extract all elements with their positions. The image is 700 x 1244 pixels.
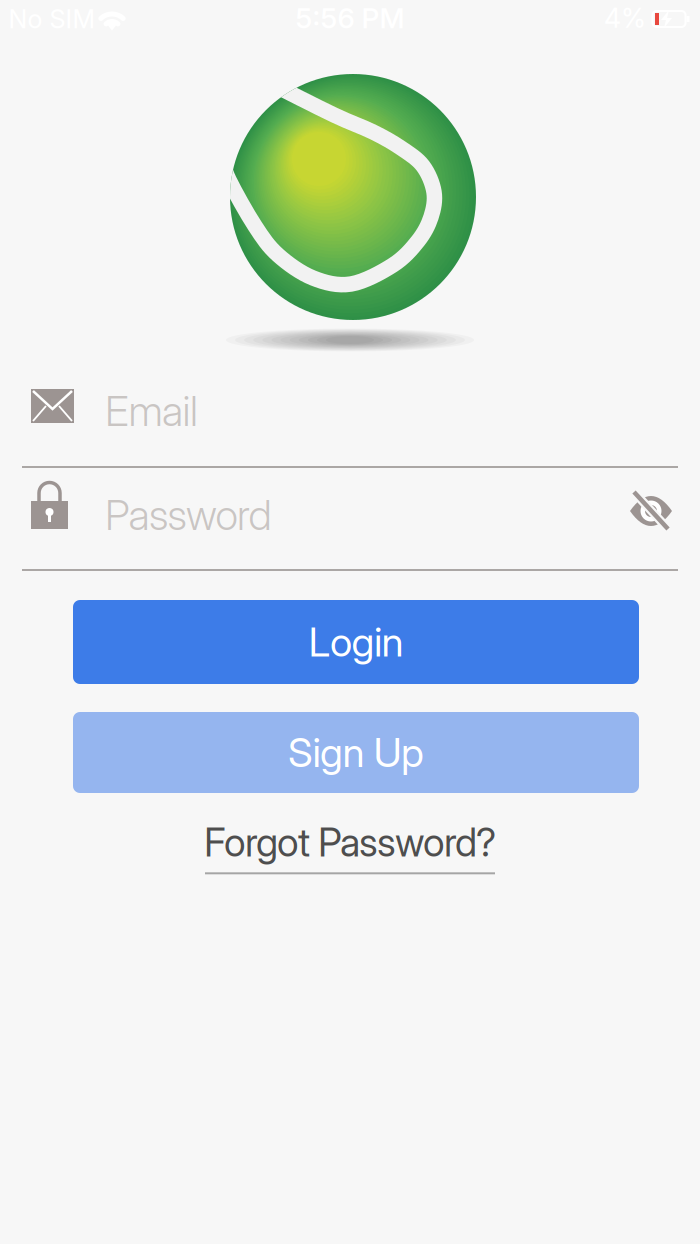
staticText: Password xyxy=(105,491,271,539)
staticText: Email xyxy=(105,387,198,435)
staticText: 5:56 PM xyxy=(295,1,404,34)
button[interactable]: Sign Up xyxy=(73,712,639,793)
button[interactable]: Login xyxy=(73,600,639,684)
button[interactable]: Show password xyxy=(623,483,679,539)
staticText: Forgot Password? xyxy=(204,820,496,865)
button[interactable]: Forgot Password? xyxy=(204,820,496,874)
staticText: Login xyxy=(308,618,403,666)
staticText: Sign Up xyxy=(288,729,424,776)
